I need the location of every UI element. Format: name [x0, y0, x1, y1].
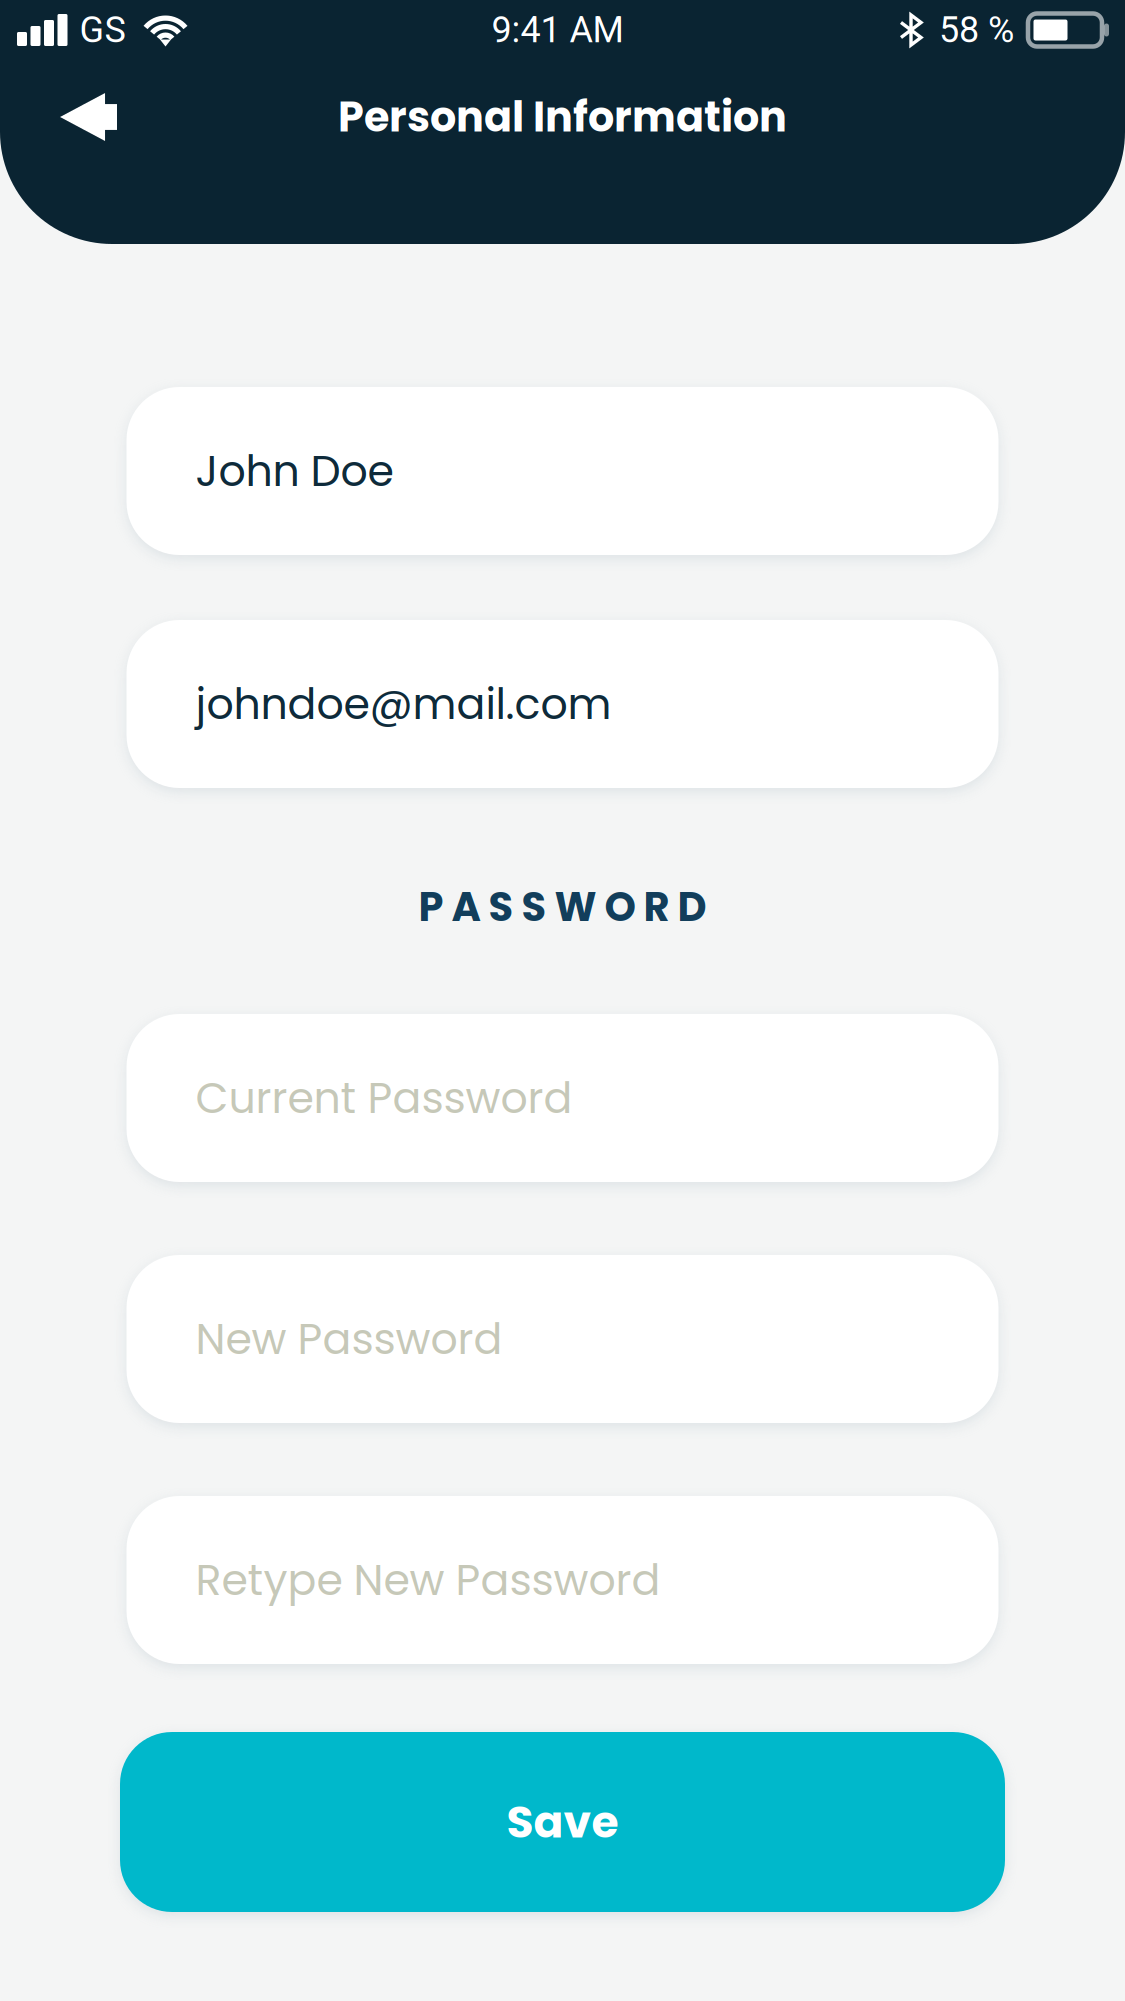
- button[interactable]: Back: [0, 71, 157, 163]
- staticText: Current Password: [195, 1068, 572, 1128]
- staticText: PASSWORD: [418, 879, 706, 935]
- button[interactable]: New Password: [126, 1255, 998, 1423]
- button[interactable]: johndoe@mail.com: [126, 620, 998, 788]
- button[interactable]: Current Password: [126, 1014, 998, 1182]
- staticText: New Password: [195, 1309, 502, 1369]
- staticText: Personal Information: [338, 88, 787, 146]
- button[interactable]: John Doe: [126, 387, 998, 555]
- staticText: John Doe: [195, 441, 393, 501]
- staticText: Retype New Password: [195, 1550, 660, 1610]
- staticText: 58 %: [939, 9, 1014, 51]
- staticText: johndoe@mail.com: [195, 674, 611, 734]
- staticText: GS: [79, 9, 125, 51]
- button[interactable]: Retype New Password: [126, 1496, 998, 1664]
- button[interactable]: Save: [120, 1732, 1005, 1912]
- staticText: 9:41 AM: [491, 9, 623, 51]
- staticText: Save: [506, 1791, 618, 1853]
